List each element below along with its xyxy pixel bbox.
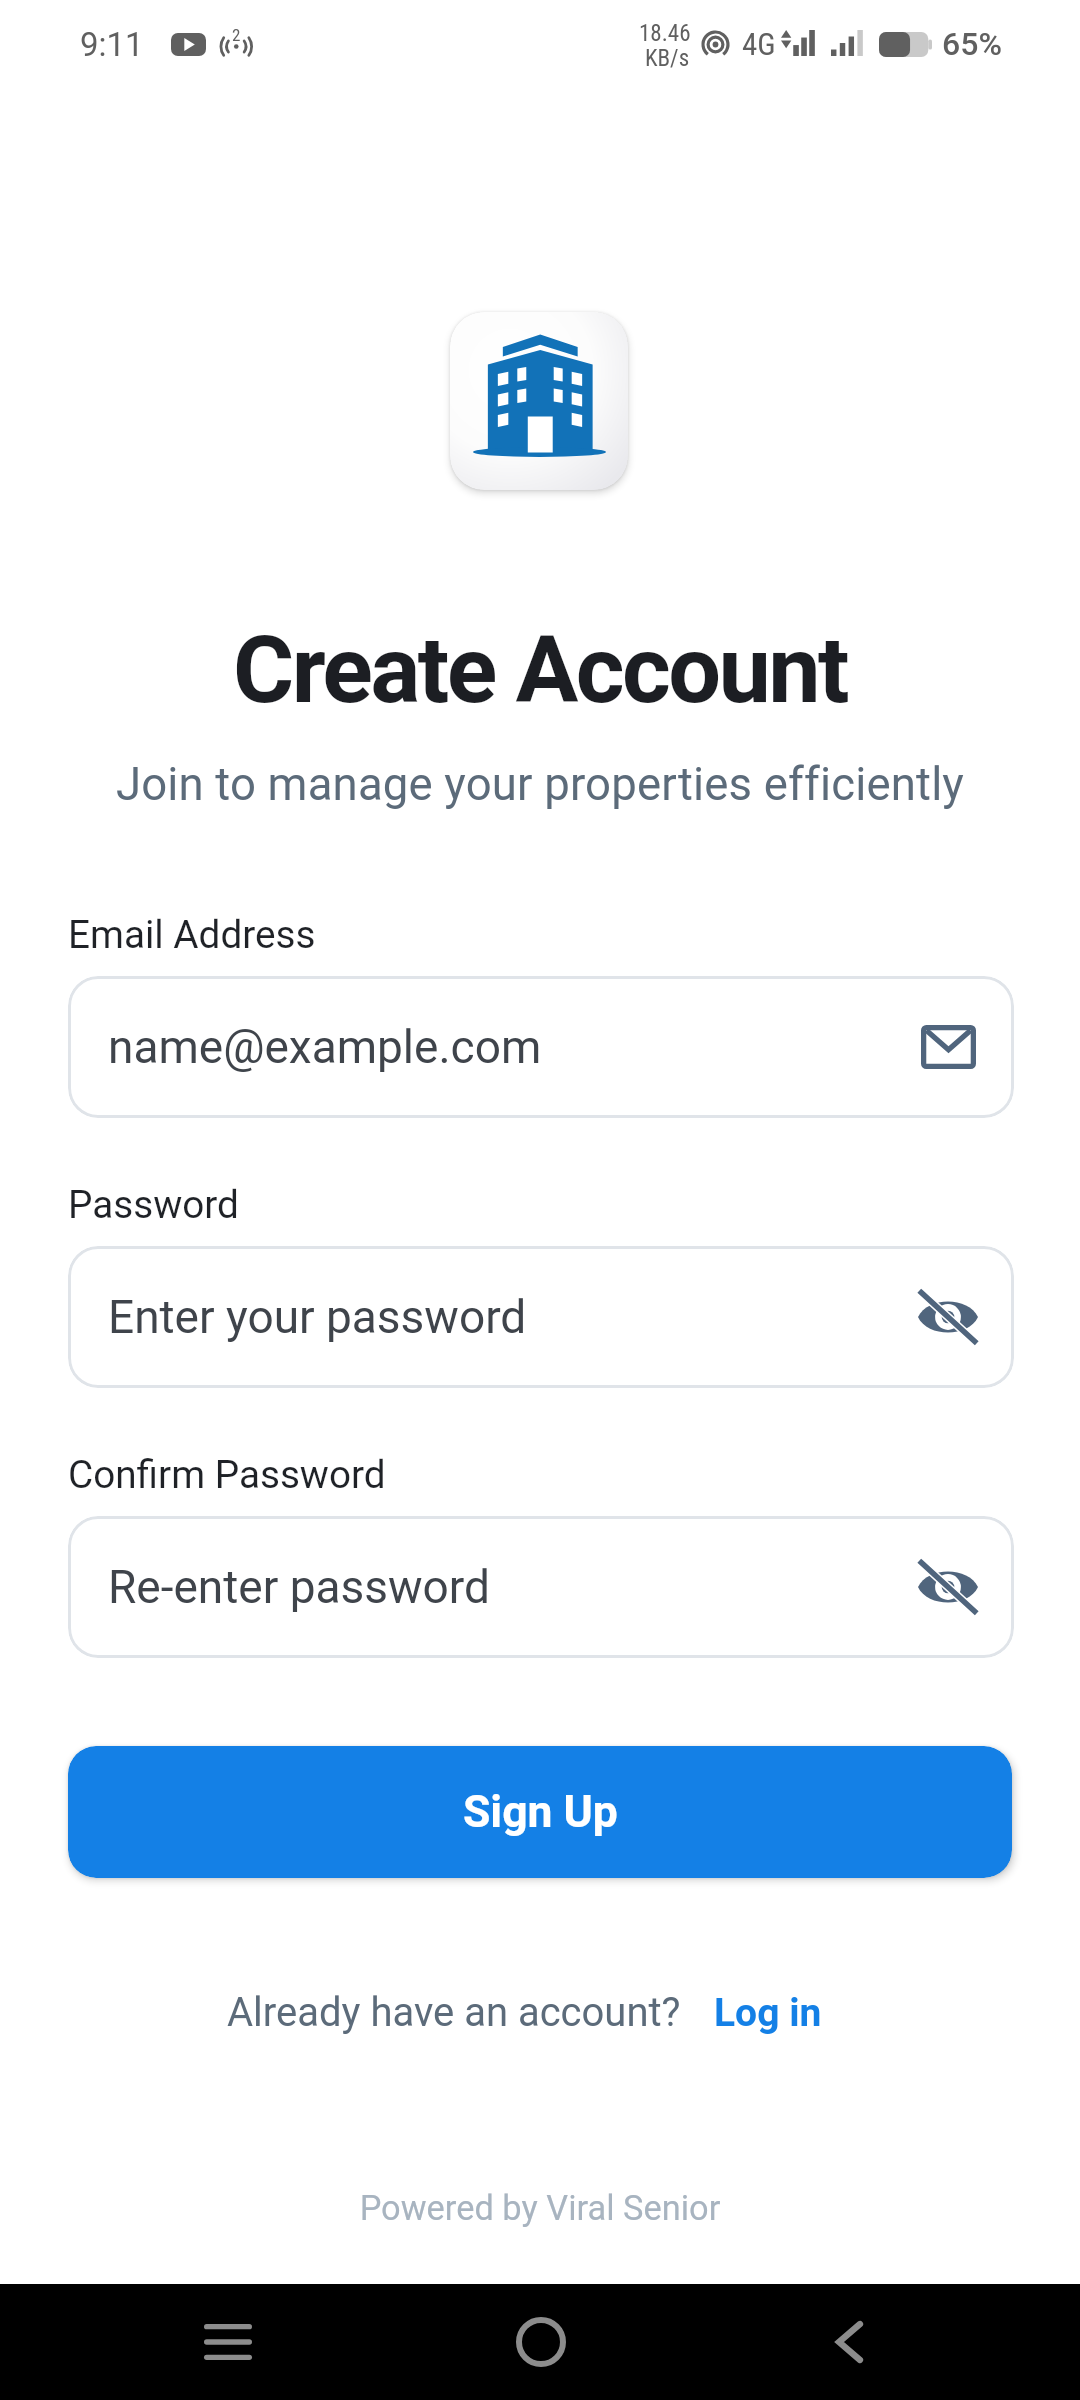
staticText: 18.46 [639, 20, 691, 47]
staticText: Create Account [0, 615, 1080, 725]
button[interactable]: Back [789, 2292, 909, 2392]
staticText: Log in [714, 1990, 822, 2036]
staticText: 65% [942, 25, 1002, 63]
button[interactable]: Log in [714, 1990, 822, 2036]
staticText: Join to manage your properties efficient… [0, 758, 1080, 811]
button[interactable]: Show password [918, 1291, 978, 1343]
staticText: Password [68, 1182, 239, 1227]
staticText: KB/s [645, 45, 690, 72]
button[interactable]: Recent apps [168, 2292, 288, 2392]
button[interactable]: Re-enter password [68, 1516, 1014, 1658]
staticText: name@example.com [108, 1020, 918, 1074]
button[interactable]: Home [481, 2292, 601, 2392]
button[interactable]: name@example.com [68, 976, 1014, 1118]
staticText: Re-enter password [108, 1560, 918, 1614]
button[interactable]: Email [918, 1021, 978, 1073]
button[interactable]: Show password [918, 1561, 978, 1613]
staticText: Email Address [68, 912, 316, 957]
staticText: Already have an account? [227, 1989, 681, 2036]
button[interactable]: Enter your password [68, 1246, 1014, 1388]
staticText: Sign Up [463, 1786, 618, 1838]
button[interactable]: Sign Up [68, 1746, 1012, 1878]
staticText: 9:11 [80, 25, 144, 64]
staticText: 4G [742, 26, 776, 62]
staticText: 2 [232, 25, 241, 45]
staticText: Powered by Viral Senior [0, 2188, 1080, 2228]
staticText: Enter your password [108, 1290, 918, 1344]
staticText: Confirm Password [68, 1452, 386, 1497]
